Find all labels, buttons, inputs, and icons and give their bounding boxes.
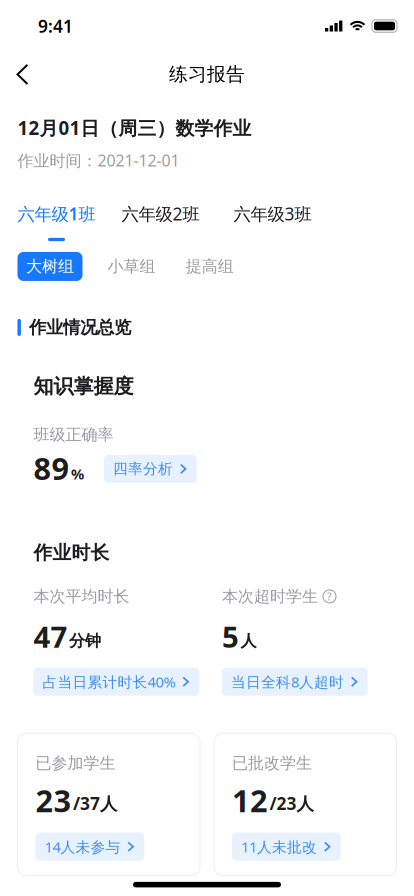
staticText: 作业时间：2021-12-01 bbox=[17, 150, 179, 171]
staticText: 已参加学生 bbox=[35, 753, 115, 773]
staticText: 当日全科8人超时 bbox=[231, 672, 344, 691]
button[interactable]: 当日全科8人超时 bbox=[222, 668, 368, 696]
staticText: 班级正确率 bbox=[33, 425, 113, 445]
button[interactable]: 六年级3班 bbox=[233, 202, 311, 241]
button[interactable]: 提高组 bbox=[177, 252, 242, 281]
button[interactable]: Back bbox=[0, 63, 45, 86]
staticText: 人 bbox=[240, 631, 256, 651]
staticText: 小草组 bbox=[107, 257, 155, 276]
staticText: ? bbox=[327, 589, 332, 604]
staticText: 本次超时学生 bbox=[222, 587, 318, 606]
staticText: 12月01日（周三）数学作业 bbox=[17, 115, 251, 140]
staticText: 14人未参与 bbox=[45, 837, 121, 856]
staticText: 作业情况总览 bbox=[29, 317, 131, 338]
staticText: 提高组 bbox=[186, 257, 234, 276]
button[interactable]: 六年级2班 bbox=[121, 202, 199, 241]
staticText: 四率分析 bbox=[113, 460, 173, 478]
button[interactable]: 14人未参与 bbox=[35, 833, 144, 861]
staticText: 练习报告 bbox=[169, 63, 245, 86]
button[interactable]: 四率分析 bbox=[104, 455, 197, 483]
staticText: 5 bbox=[222, 617, 239, 656]
staticText: 占当日累计时长40% bbox=[43, 672, 176, 691]
staticText: 六年级2班 bbox=[121, 202, 199, 225]
staticText: 作业时长 bbox=[33, 541, 109, 564]
staticText: 分钟 bbox=[69, 631, 101, 651]
button[interactable]: 小草组 bbox=[99, 252, 164, 281]
staticText: 11人未批改 bbox=[241, 837, 317, 856]
button[interactable]: 大树组 bbox=[17, 252, 82, 281]
staticText: 12 bbox=[232, 780, 268, 821]
staticText: 六年级1班 bbox=[17, 202, 95, 225]
button[interactable]: 六年级1班 bbox=[17, 202, 95, 241]
staticText: 已批改学生 bbox=[232, 753, 312, 773]
button[interactable]: 11人未批改 bbox=[232, 833, 341, 861]
staticText: 本次平均时长 bbox=[33, 587, 129, 606]
staticText: 9:41 bbox=[38, 14, 73, 37]
staticText: 89 bbox=[33, 448, 69, 488]
staticText: 大树组 bbox=[26, 257, 74, 276]
staticText: 47 bbox=[33, 617, 67, 656]
staticText: % bbox=[71, 464, 84, 483]
staticText: /23人 bbox=[269, 792, 313, 815]
staticText: /37人 bbox=[73, 792, 117, 815]
staticText: 知识掌握度 bbox=[33, 374, 133, 399]
staticText: 六年级3班 bbox=[233, 202, 311, 225]
button[interactable]: 占当日累计时长40% bbox=[33, 668, 199, 696]
staticText: 23 bbox=[35, 780, 71, 821]
